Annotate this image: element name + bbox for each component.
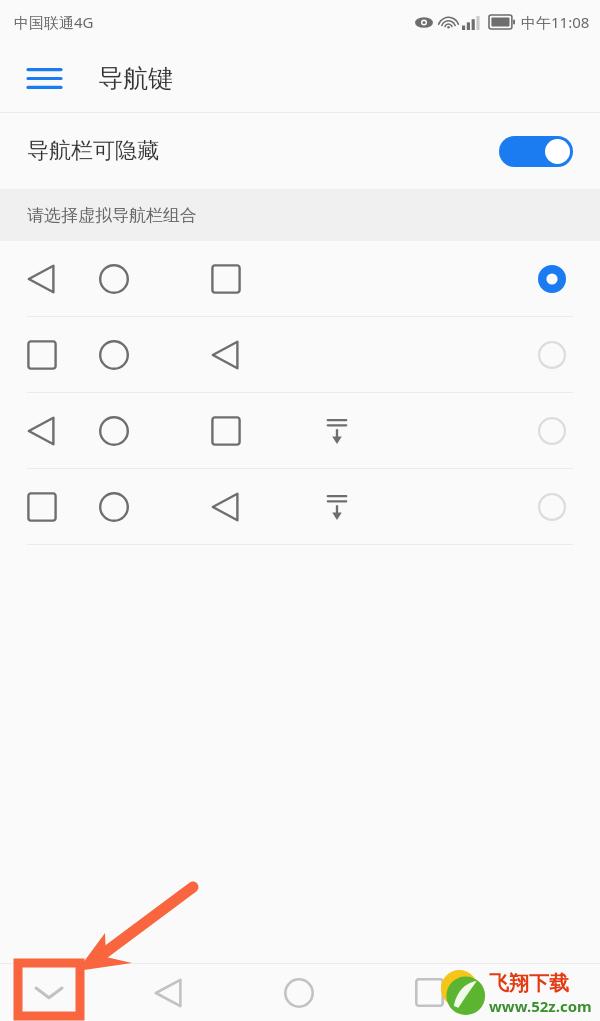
button[interactable]: Navigation key combination <box>0 241 600 316</box>
button[interactable]: Navigation key combination <box>0 469 600 544</box>
button[interactable]: Home <box>268 964 330 1021</box>
button[interactable]: Recents <box>398 964 460 1021</box>
staticText: 飞翔下载 <box>489 971 569 996</box>
staticText: 导航栏可隐藏 <box>27 137 159 165</box>
staticText: 中午11:08 <box>521 12 590 32</box>
staticText: 中国联通4G <box>14 12 94 32</box>
staticText: www.52z.com <box>489 996 592 1016</box>
button[interactable]: Menu <box>20 54 68 102</box>
button[interactable]: Hide navigation bar <box>18 964 80 1021</box>
staticText: 请选择虚拟导航栏组合 <box>27 205 197 226</box>
button[interactable]: Navigation key combination <box>0 393 600 468</box>
staticText: 导航键 <box>98 63 173 94</box>
button[interactable]: Navigation key combination <box>0 317 600 392</box>
button[interactable]: 导航栏可隐藏 <box>0 113 600 189</box>
button[interactable]: Back <box>138 964 200 1021</box>
